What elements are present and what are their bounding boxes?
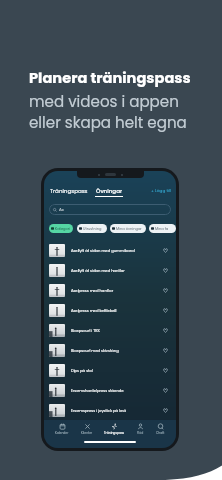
button[interactable]: + Lägg till xyxy=(151,187,172,194)
button[interactable]: Kategori xyxy=(51,224,71,233)
staticText: Dips på stol xyxy=(71,368,162,373)
staticText: Enarmshantelpress stående xyxy=(71,388,162,393)
button[interactable]: Utrustning xyxy=(79,224,105,233)
button[interactable]: Träningspass xyxy=(50,187,88,195)
button[interactable]: Favorit xyxy=(162,287,169,294)
button[interactable]: Favorit xyxy=(162,267,169,274)
button[interactable]: Enarmshantelpress stående xyxy=(49,380,169,400)
staticText: + Lägg till xyxy=(151,188,172,194)
staticText: Träningspass xyxy=(104,431,125,435)
button[interactable]: Favorit xyxy=(162,407,169,414)
staticText: Axellyft åt sidan med hantlar xyxy=(71,268,162,273)
button[interactable]: Mina övningar xyxy=(112,224,144,233)
button[interactable]: Favorit xyxy=(162,307,169,314)
staticText: Bicepscurl i TRX xyxy=(71,328,162,333)
button[interactable]: Favorit xyxy=(162,247,169,254)
button[interactable]: Enarmspress i joystick på knä xyxy=(49,400,169,420)
staticText: Kategori xyxy=(55,226,71,231)
staticText: Bicepscurl med skivstång xyxy=(71,348,162,353)
staticText: Ax xyxy=(59,207,64,213)
button[interactable]: Övningar xyxy=(95,187,123,197)
button[interactable]: Ax xyxy=(49,204,171,215)
button[interactable]: Axellyft åt sidan med hantlar xyxy=(49,260,169,280)
staticText: Axellyft åt sidan med gummiband xyxy=(71,248,162,253)
staticText: Mina fa xyxy=(155,226,169,231)
staticText: Utrustning xyxy=(83,226,102,231)
button[interactable]: Axelpress med hantlar xyxy=(49,280,169,300)
staticText: Axelpress med kettlebell xyxy=(71,308,162,313)
staticText: med videos i appen xyxy=(29,91,179,112)
button[interactable]: Chatt xyxy=(155,423,166,435)
staticText: Enarmspress i joystick på knä xyxy=(71,408,162,413)
button[interactable]: Bicepscurl med skivstång xyxy=(49,340,169,360)
button[interactable]: Favorit xyxy=(162,367,169,374)
button[interactable]: Favorit xyxy=(162,387,169,394)
button[interactable]: Mina fa xyxy=(151,224,174,233)
button[interactable]: Axellyft åt sidan med gummiband xyxy=(49,240,169,260)
button[interactable]: Favorit xyxy=(162,327,169,334)
staticText: Kalender xyxy=(55,431,69,435)
button[interactable]: Dips på stol xyxy=(49,360,169,380)
staticText: Planera träningspass xyxy=(29,68,191,88)
button[interactable]: Träningspass xyxy=(103,423,126,435)
staticText: Chatt xyxy=(156,431,165,435)
staticText: Mina övningar xyxy=(116,226,142,231)
staticText: Träningspass xyxy=(50,187,88,195)
staticText: eller skapa helt egna xyxy=(29,112,187,133)
button[interactable]: Klienter xyxy=(80,423,94,435)
button[interactable]: Bicepscurl i TRX xyxy=(49,320,169,340)
button[interactable]: Flöd xyxy=(136,423,145,435)
button[interactable]: Axelpress med kettlebell xyxy=(49,300,169,320)
button[interactable]: Kalender xyxy=(54,423,70,435)
staticText: Axelpress med hantlar xyxy=(71,288,162,293)
staticText: Klienter xyxy=(81,431,93,435)
staticText: Övningar xyxy=(96,187,123,195)
staticText: Flöd xyxy=(137,431,144,435)
button[interactable]: Favorit xyxy=(162,347,169,354)
